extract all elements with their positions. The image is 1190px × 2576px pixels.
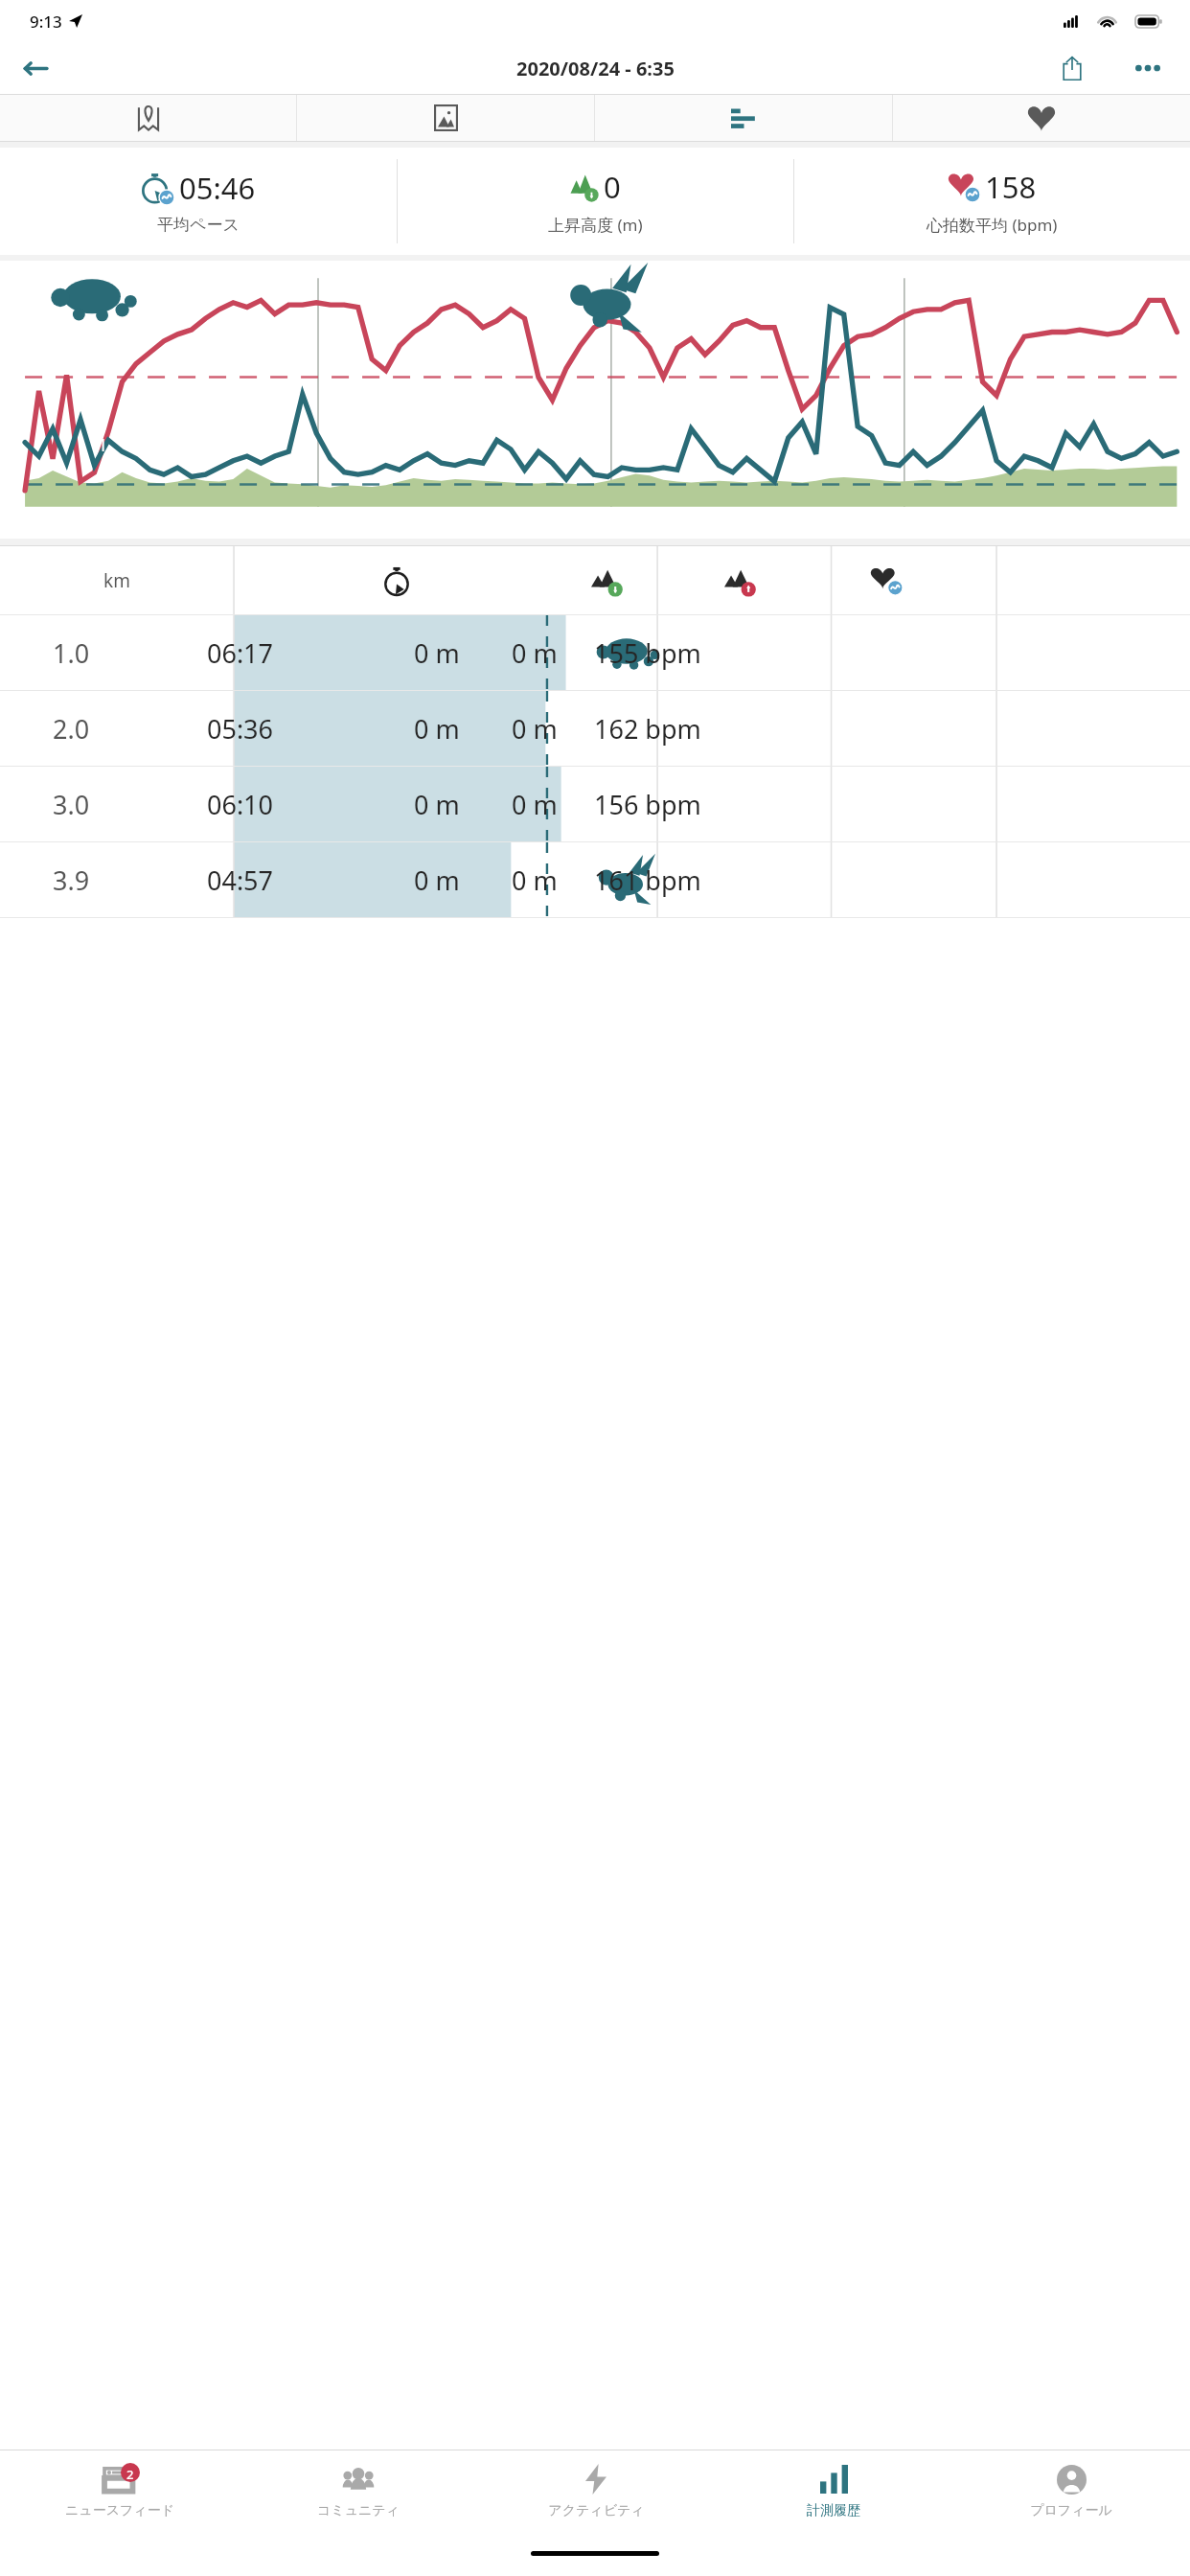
staticText: 04:57 xyxy=(207,862,274,898)
button[interactable]: More options xyxy=(1121,42,1175,94)
button[interactable]: 158 xyxy=(794,148,1190,255)
button[interactable]: 05:46 xyxy=(0,148,397,255)
button[interactable]: アクティビティ xyxy=(477,2450,715,2543)
staticText: 0 m xyxy=(512,711,558,747)
staticText: 155 bpm xyxy=(594,635,701,671)
staticText: 2 xyxy=(267,433,278,457)
staticText: 1 xyxy=(98,433,108,457)
button[interactable]: 1.0 xyxy=(0,615,1190,690)
button[interactable]: Heart rate xyxy=(893,95,1190,141)
button[interactable]: プロフィール xyxy=(952,2450,1190,2543)
staticText: 2020/08/24 - 6:35 xyxy=(516,56,675,81)
staticText: 0 m xyxy=(512,635,558,671)
staticText: 161 bpm xyxy=(594,862,701,898)
staticText: 0 m xyxy=(414,862,460,898)
staticText: 0 m xyxy=(414,711,460,747)
staticText: 06:10 xyxy=(207,787,274,822)
staticText: 1.0 xyxy=(53,635,90,671)
staticText: 計測履歴 xyxy=(807,2502,860,2519)
staticText: 平均ペース xyxy=(157,215,240,235)
staticText: 0 m xyxy=(512,787,558,822)
staticText: 3.0 xyxy=(53,787,90,822)
button[interactable]: 0 xyxy=(398,148,793,255)
button[interactable]: Charts xyxy=(595,95,892,141)
staticText: アクティビティ xyxy=(548,2502,645,2519)
staticText: 06:17 xyxy=(207,635,274,671)
staticText: 上昇高度 (m) xyxy=(548,214,643,236)
staticText: 05:36 xyxy=(207,711,274,747)
staticText: 156 bpm xyxy=(594,787,701,822)
staticText: 0 m xyxy=(512,862,558,898)
staticText: 2.0 xyxy=(53,711,90,747)
staticText: 9:13 xyxy=(30,11,62,33)
button[interactable]: コミュニティ xyxy=(239,2450,477,2543)
button[interactable]: 2.0 xyxy=(0,691,1190,766)
button[interactable]: Back xyxy=(0,42,69,94)
button[interactable]: Photos xyxy=(297,95,594,141)
staticText: ニュースフィード xyxy=(65,2502,174,2519)
staticText: 05:46 xyxy=(179,168,256,208)
staticText: 3.9 xyxy=(53,862,90,898)
staticText: コミュニティ xyxy=(317,2502,400,2519)
button[interactable]: Map xyxy=(0,95,296,141)
staticText: 心拍数平均 (bpm) xyxy=(927,214,1058,236)
button[interactable]: Share xyxy=(1046,42,1098,94)
staticText: km xyxy=(103,568,130,593)
staticText: 158 xyxy=(985,167,1037,207)
staticText: 0 xyxy=(604,167,621,207)
button[interactable]: 3.9 xyxy=(0,842,1190,917)
staticText: 0 m xyxy=(414,635,460,671)
staticText: 0 m xyxy=(414,787,460,822)
button[interactable]: 3.0 xyxy=(0,767,1190,841)
button[interactable]: 2 xyxy=(0,2450,239,2543)
staticText: 162 bpm xyxy=(594,711,701,747)
staticText: 2 xyxy=(126,2466,134,2483)
button[interactable]: 計測履歴 xyxy=(715,2450,952,2543)
staticText: プロフィール xyxy=(1030,2502,1112,2519)
